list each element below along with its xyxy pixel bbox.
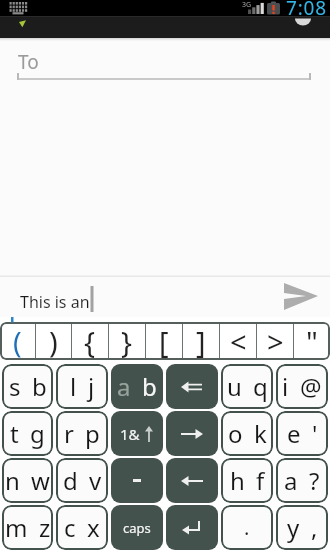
staticText: q bbox=[253, 370, 268, 403]
button[interactable] bbox=[0, 16, 330, 38]
staticText: g bbox=[30, 417, 45, 450]
button[interactable]: } bbox=[109, 322, 145, 360]
staticText: a bbox=[284, 464, 298, 497]
button[interactable]: d bbox=[56, 458, 108, 503]
staticText: 7:08 bbox=[286, 0, 327, 11]
button[interactable]: e bbox=[276, 411, 328, 456]
button[interactable]: caps bbox=[111, 505, 163, 550]
staticText: [ bbox=[159, 322, 169, 360]
button[interactable] bbox=[0, 38, 330, 84]
button[interactable] bbox=[111, 458, 163, 503]
staticText: e bbox=[287, 417, 301, 450]
staticText: y bbox=[287, 511, 300, 544]
staticText: w bbox=[31, 464, 50, 497]
button[interactable] bbox=[166, 505, 218, 550]
button[interactable]: [ bbox=[146, 322, 182, 360]
button[interactable]: n bbox=[2, 458, 53, 503]
button[interactable]: i bbox=[276, 364, 328, 409]
staticText: ) bbox=[49, 322, 58, 360]
staticText: l bbox=[70, 370, 77, 403]
button[interactable]: ) bbox=[36, 322, 71, 360]
button[interactable] bbox=[166, 364, 218, 409]
button[interactable]: l bbox=[56, 364, 108, 409]
staticText: To bbox=[18, 49, 39, 75]
staticText: v bbox=[89, 464, 102, 497]
staticText: i bbox=[282, 370, 289, 403]
button[interactable]: t bbox=[2, 411, 53, 456]
button[interactable] bbox=[270, 277, 326, 317]
button[interactable]: h bbox=[221, 458, 273, 503]
staticText: b bbox=[142, 370, 157, 403]
staticText: m bbox=[5, 511, 28, 544]
button[interactable]: ] bbox=[183, 322, 219, 360]
button[interactable]: c bbox=[56, 505, 108, 550]
button[interactable]: . bbox=[221, 505, 273, 550]
staticText: s bbox=[9, 370, 21, 403]
staticText: { bbox=[84, 322, 96, 360]
button[interactable]: a bbox=[111, 364, 163, 409]
button[interactable] bbox=[166, 411, 218, 456]
staticText: o bbox=[228, 417, 243, 450]
button[interactable]: ( bbox=[0, 322, 35, 360]
staticText: r bbox=[64, 417, 74, 450]
staticText: t bbox=[10, 417, 19, 450]
staticText: j bbox=[88, 370, 95, 403]
button[interactable]: o bbox=[221, 411, 273, 456]
button[interactable] bbox=[166, 458, 218, 503]
staticText: p bbox=[85, 417, 100, 450]
button[interactable]: " bbox=[294, 322, 330, 360]
staticText: ( bbox=[13, 322, 22, 360]
staticText: d bbox=[63, 464, 78, 497]
staticText: caps bbox=[123, 519, 151, 537]
staticText: } bbox=[121, 322, 133, 360]
button[interactable]: < bbox=[220, 322, 256, 360]
staticText: < bbox=[230, 322, 247, 360]
staticText: n bbox=[5, 464, 20, 497]
staticText: > bbox=[267, 322, 284, 360]
staticText: This is an bbox=[20, 291, 90, 313]
button[interactable]: s bbox=[2, 364, 53, 409]
button[interactable]: This is an bbox=[0, 280, 264, 317]
staticText: ] bbox=[196, 322, 206, 360]
staticText: u bbox=[227, 370, 242, 403]
staticText: 3G bbox=[242, 0, 252, 10]
staticText: z bbox=[39, 511, 51, 544]
staticText: k bbox=[254, 417, 267, 450]
staticText: b bbox=[32, 370, 47, 403]
button[interactable]: u bbox=[221, 364, 273, 409]
staticText: @ bbox=[300, 370, 322, 403]
button[interactable]: y bbox=[276, 505, 328, 550]
staticText: c bbox=[64, 511, 76, 544]
staticText: ' bbox=[312, 417, 318, 450]
button[interactable]: { bbox=[72, 322, 108, 360]
staticText: 1& bbox=[120, 424, 140, 444]
staticText: h bbox=[230, 464, 245, 497]
staticText: , bbox=[311, 511, 318, 544]
staticText: f bbox=[256, 464, 265, 497]
button[interactable]: r bbox=[56, 411, 108, 456]
staticText: x bbox=[87, 511, 100, 544]
button[interactable]: 1& bbox=[111, 411, 163, 456]
button[interactable]: m bbox=[2, 505, 53, 550]
button[interactable]: > bbox=[257, 322, 293, 360]
staticText: ? bbox=[309, 464, 320, 497]
button[interactable]: a bbox=[276, 458, 328, 503]
staticText: " bbox=[306, 322, 318, 360]
staticText: . bbox=[244, 514, 250, 541]
staticText: a bbox=[117, 370, 131, 403]
